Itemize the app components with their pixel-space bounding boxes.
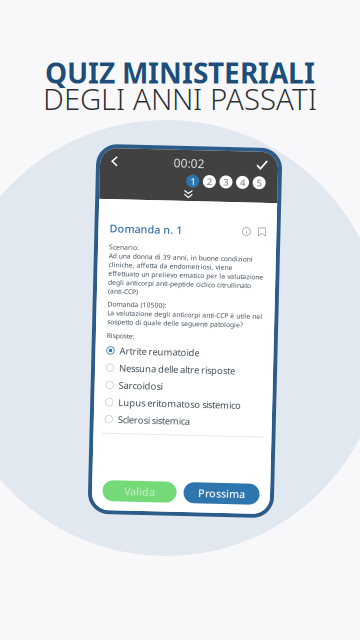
staticText: Valida xyxy=(128,485,159,500)
staticText: Domanda n. 1 xyxy=(107,223,180,237)
staticText: Risposte: xyxy=(107,333,135,342)
button[interactable]: Expand xyxy=(181,187,189,201)
staticText: Sarcoidosi xyxy=(120,380,164,393)
staticText: 1 xyxy=(187,175,192,187)
button[interactable]: Bookmark xyxy=(248,226,263,234)
staticText: Ad una donna di 39 anni, in buone condiz… xyxy=(107,253,262,297)
button[interactable]: Submit xyxy=(249,155,267,171)
button[interactable]: Artrite reumatoide xyxy=(107,344,263,361)
button[interactable]: Back xyxy=(103,154,118,171)
button[interactable]: Sclerosi sistemica xyxy=(107,412,263,430)
button[interactable]: Prossima xyxy=(187,482,263,503)
staticText: DEGLI ANNI PASSATI xyxy=(43,79,317,118)
staticText: La valutazione degli anticorpi anti-CCP … xyxy=(107,310,262,328)
staticText: Artrite reumatoide xyxy=(120,346,200,358)
staticText: 2 xyxy=(203,175,208,187)
button[interactable]: Valida xyxy=(106,482,180,503)
staticText: Lupus eritomatoso sistemico xyxy=(120,398,243,410)
staticText: Domanda (10500): xyxy=(107,301,166,310)
staticText: 4 xyxy=(236,175,241,187)
button[interactable]: 2 xyxy=(199,174,212,187)
staticText: Scenario: xyxy=(107,244,137,253)
staticText: Nessuna delle altre risposte xyxy=(120,363,236,376)
button[interactable]: 4 xyxy=(232,174,245,187)
button[interactable]: Lupus eritomatoso sistemico xyxy=(107,395,263,412)
button[interactable]: Nessuna delle altre risposte xyxy=(107,361,263,378)
staticText: 5 xyxy=(253,175,258,187)
staticText: Prossima xyxy=(202,485,249,500)
button[interactable]: 3 xyxy=(216,174,229,187)
staticText: 3 xyxy=(220,175,225,187)
staticText: Sclerosi sistemica xyxy=(120,415,192,427)
button[interactable]: 5 xyxy=(249,174,262,187)
staticText: 00:02 xyxy=(169,155,200,171)
staticText: QUIZ MINISTERIALI xyxy=(45,54,315,91)
button[interactable]: 1 xyxy=(183,174,196,187)
button[interactable]: Sarcoidosi xyxy=(107,378,263,395)
button[interactable]: Info xyxy=(240,226,248,234)
